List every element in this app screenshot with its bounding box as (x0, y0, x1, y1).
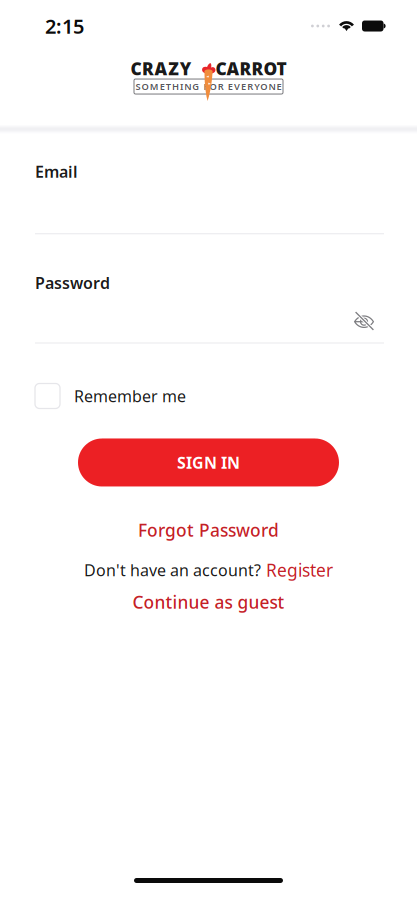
button[interactable]: Remember me (35, 383, 384, 408)
staticText: Forgot Password (138, 518, 279, 541)
button[interactable]: SIGN IN (78, 438, 339, 486)
staticText: Don't have an account? (84, 559, 261, 581)
staticText: Remember me (74, 385, 186, 407)
staticText: 2:15 (45, 13, 84, 39)
button[interactable]: Register (266, 558, 333, 581)
staticText: SIGN IN (177, 452, 240, 473)
staticText: SOMETHING FOR EVERYONE (135, 80, 282, 93)
staticText: Password (35, 272, 110, 293)
button[interactable]: Forgot Password (138, 518, 279, 541)
staticText: CARROT (215, 57, 286, 80)
staticText: Email (35, 161, 78, 182)
staticText: Register (266, 558, 333, 581)
staticText: CRAZY (130, 57, 192, 80)
button[interactable]: Show password (353, 310, 375, 331)
button[interactable]: Continue as guest (132, 590, 284, 613)
staticText: Continue as guest (132, 590, 284, 613)
